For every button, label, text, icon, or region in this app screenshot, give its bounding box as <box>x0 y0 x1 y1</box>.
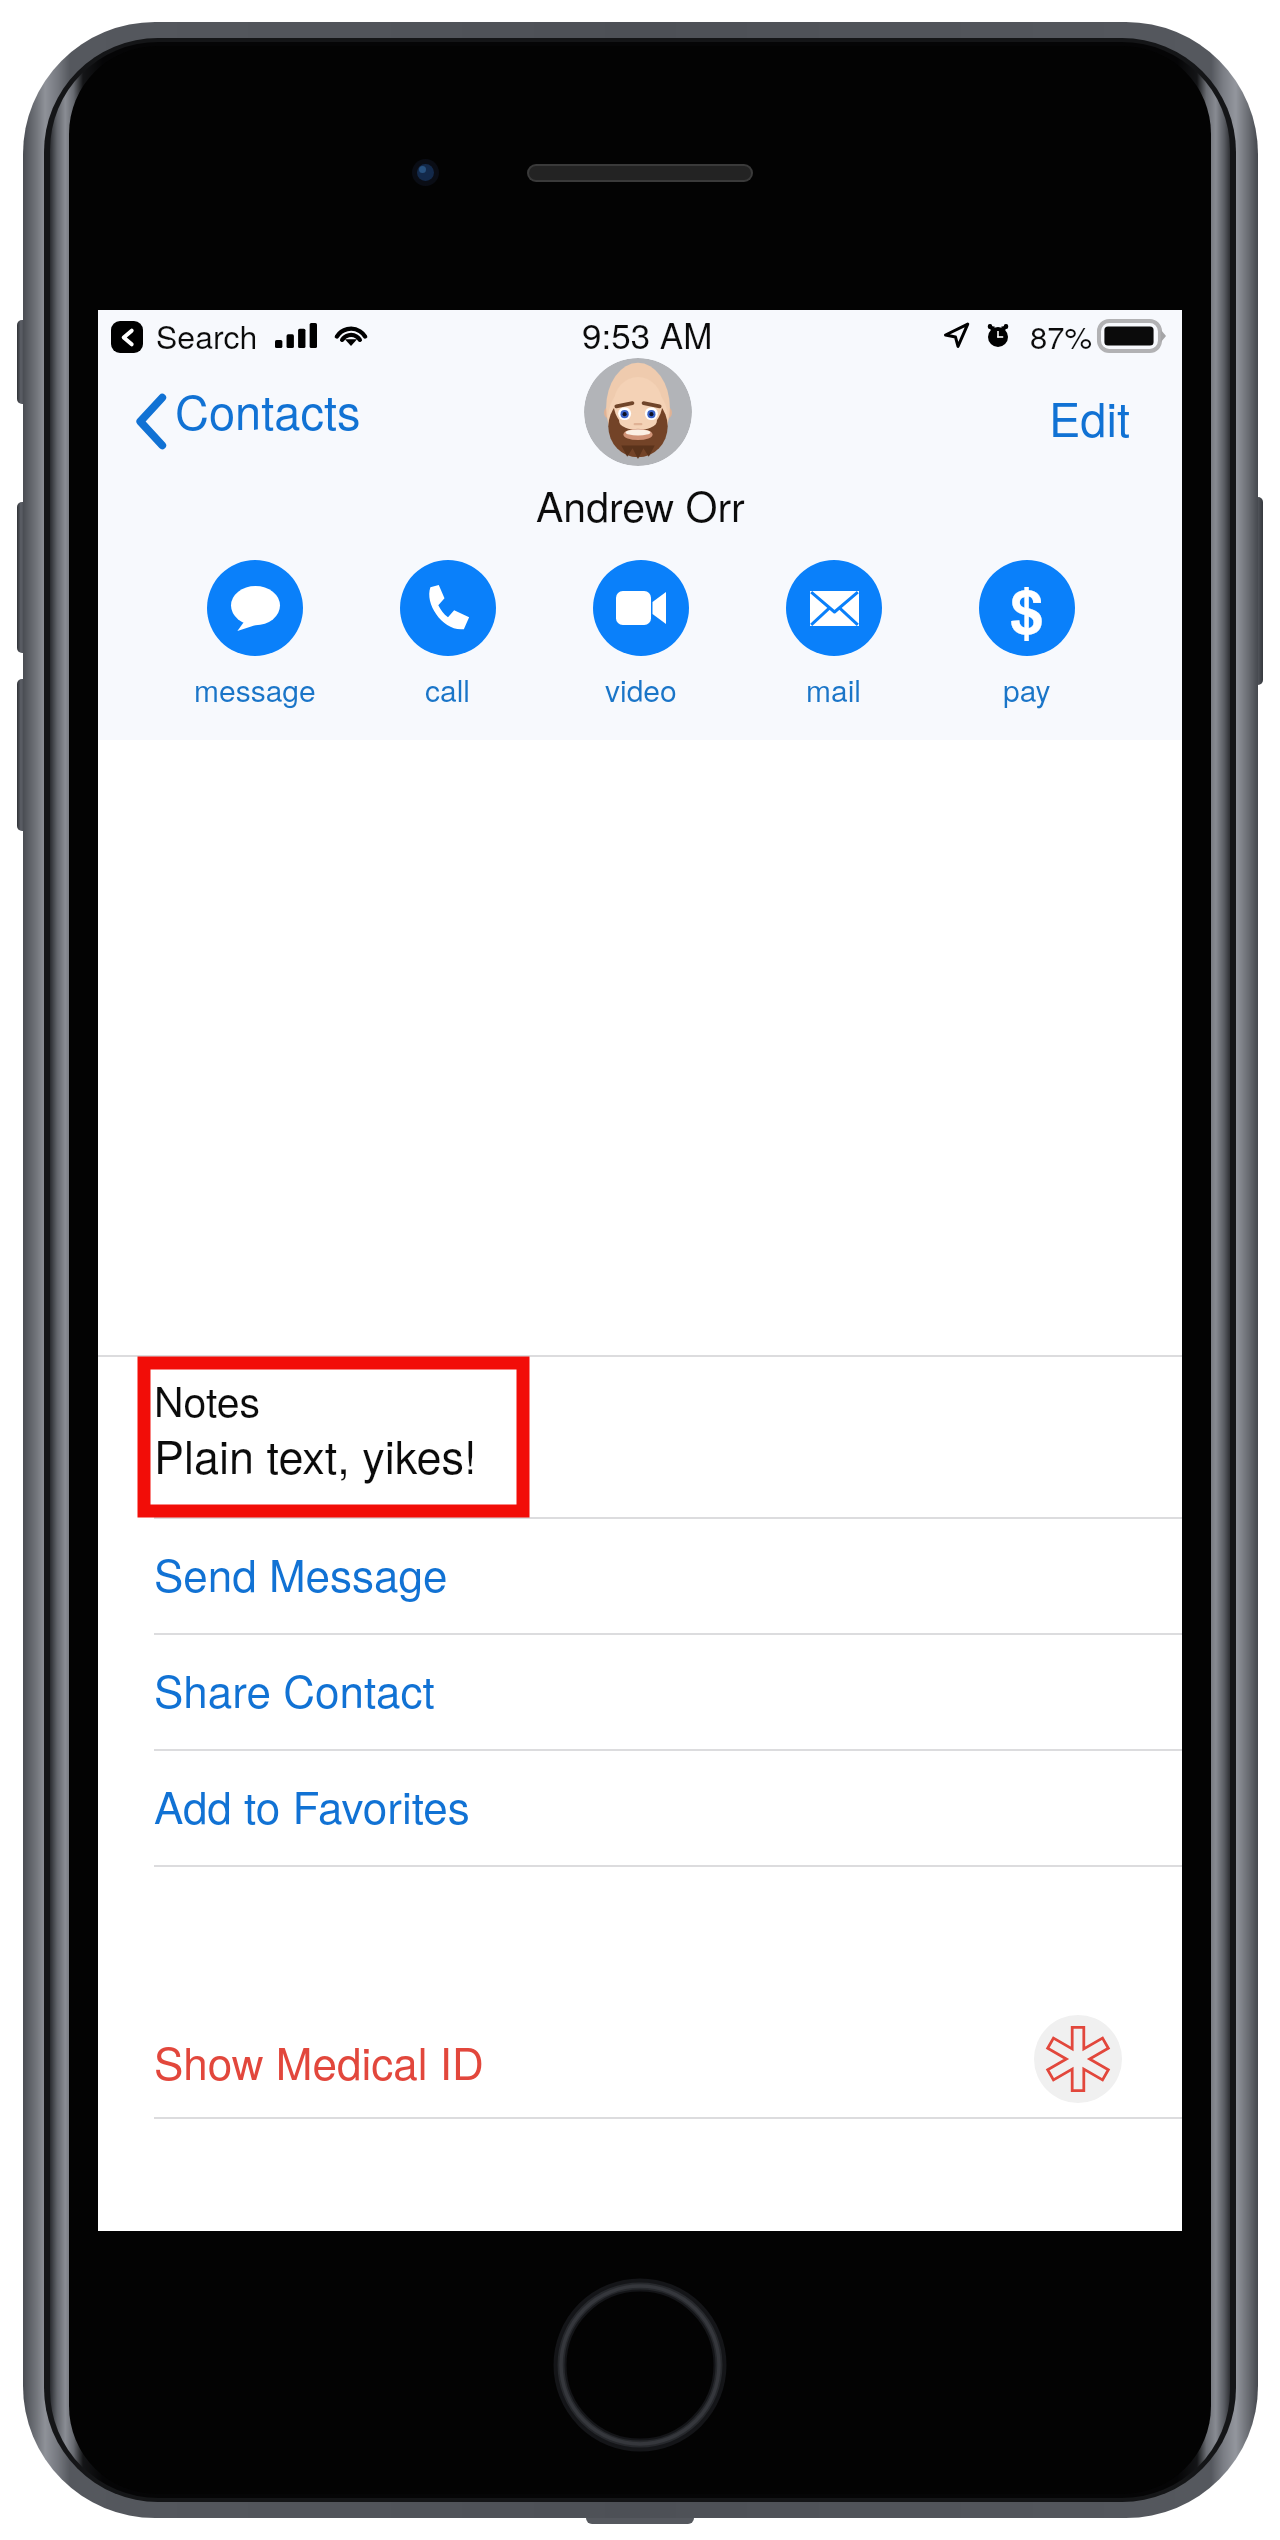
staticText: Notes <box>154 1370 261 1429</box>
staticText: Contacts <box>175 376 361 443</box>
staticText: $ <box>1010 565 1044 651</box>
button[interactable]: $ <box>930 560 1123 711</box>
button[interactable]: video <box>544 560 737 711</box>
button[interactable]: Contact photo <box>584 358 692 466</box>
button[interactable]: Share Contact <box>98 1633 1182 1749</box>
staticText: Andrew Orr <box>536 475 745 534</box>
staticText: mail <box>806 668 861 711</box>
button[interactable]: Show Medical ID <box>98 2001 1182 2117</box>
staticText: 9:53 AM <box>582 309 713 359</box>
button[interactable]: message <box>158 560 351 711</box>
button[interactable]: call <box>351 560 544 711</box>
staticText: call <box>425 668 470 711</box>
button[interactable]: Notes <box>98 1357 1182 1517</box>
button[interactable]: Send Message <box>98 1517 1182 1633</box>
staticText: Send Message <box>154 1541 448 1604</box>
staticText: message <box>194 668 316 711</box>
staticText: Add to Favorites <box>154 1773 470 1836</box>
staticText: Plain text, yikes! <box>154 1422 477 1486</box>
staticText: Share Contact <box>154 1657 435 1720</box>
button[interactable]: Contacts <box>129 372 367 447</box>
staticText: 87% <box>1030 313 1093 357</box>
button[interactable]: mail <box>737 560 930 711</box>
button[interactable]: Add to Favorites <box>98 1749 1182 1865</box>
button[interactable]: Edit <box>1041 377 1138 456</box>
staticText: video <box>605 668 677 711</box>
staticText: Show Medical ID <box>154 2029 484 2092</box>
staticText: pay <box>1003 668 1051 711</box>
button[interactable]: Back to Search <box>111 321 143 353</box>
button[interactable]: Medical ID <box>1034 2015 1122 2103</box>
staticText: Search <box>156 312 258 358</box>
